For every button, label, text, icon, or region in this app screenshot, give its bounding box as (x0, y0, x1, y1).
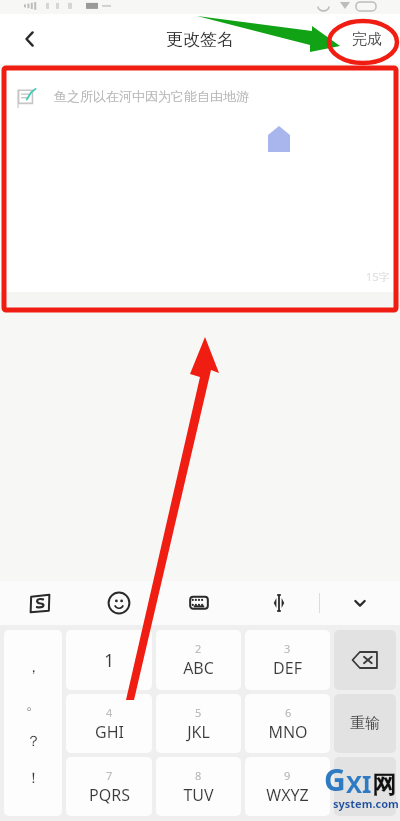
staticText: XI (346, 767, 372, 800)
staticText: 6 (285, 705, 292, 720)
button[interactable]: Hide keyboard (320, 581, 400, 625)
button[interactable]: 1 (66, 630, 152, 690)
staticText: 15字 (366, 269, 390, 284)
button[interactable]: 2 (156, 630, 241, 690)
staticText: 鱼之所以在河中因为它能自由地游 (54, 88, 249, 104)
staticText: 网 (372, 770, 396, 800)
staticText: PQRS (89, 784, 130, 806)
staticText: TUV (183, 784, 214, 806)
button[interactable]: ， (4, 630, 62, 816)
button[interactable] (334, 757, 396, 816)
staticText: 1 (104, 648, 115, 673)
staticText: 8 (195, 768, 202, 783)
button[interactable]: Keyboard layout (159, 581, 239, 625)
staticText: ， (26, 658, 41, 677)
staticText: DEF (273, 657, 302, 679)
staticText: 9 (284, 768, 291, 783)
staticText: G (324, 759, 346, 800)
button[interactable]: 7 (66, 757, 152, 816)
staticText: 。 (26, 695, 41, 714)
staticText: 5 (195, 705, 202, 720)
staticText: ？ (26, 732, 41, 751)
button[interactable]: Emoji (79, 581, 159, 625)
button[interactable]: Delete (334, 630, 396, 690)
button[interactable]: Sogou input method (0, 581, 79, 625)
staticText: 3 (284, 641, 291, 656)
button[interactable]: 鱼之所以在河中因为它能自由地游 (0, 68, 400, 306)
staticText: JKL (187, 721, 210, 743)
staticText: 完成 (352, 30, 382, 49)
button[interactable]: 完成 (340, 22, 394, 57)
button[interactable]: 4 (66, 694, 152, 753)
staticText: 7 (106, 768, 113, 783)
button[interactable]: 重输 (334, 694, 396, 753)
staticText: 4 (106, 705, 113, 720)
staticText: GHI (95, 721, 124, 743)
staticText: 重输 (350, 714, 380, 733)
button[interactable]: 9 (245, 757, 330, 816)
button[interactable]: 8 (156, 757, 241, 816)
staticText: MNO (268, 721, 308, 743)
button[interactable]: 3 (245, 630, 330, 690)
button[interactable]: 5 (156, 694, 241, 753)
staticText: 更改签名 (166, 29, 234, 50)
button[interactable]: Back (8, 17, 52, 61)
button[interactable]: 6 (245, 694, 330, 753)
staticText: WXYZ (266, 784, 309, 806)
staticText: system.com (333, 796, 399, 811)
staticText: 2 (195, 641, 202, 656)
button[interactable]: Move cursor (239, 581, 319, 625)
staticText: ！ (26, 769, 41, 788)
staticText: ABC (183, 657, 214, 679)
